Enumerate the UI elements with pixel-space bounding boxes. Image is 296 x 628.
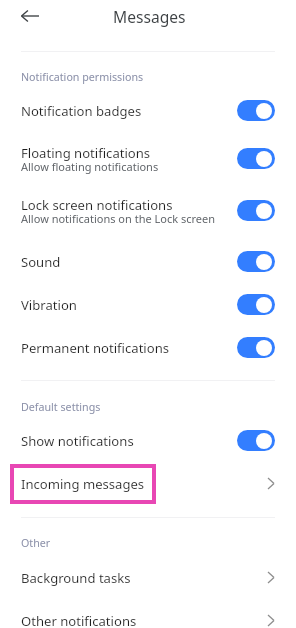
staticText: Floating notifications	[21, 144, 151, 162]
staticText: Show notifications	[21, 432, 134, 450]
button[interactable]: Notification badges switch, on	[237, 100, 275, 121]
button[interactable]: Notification badges	[0, 89, 296, 132]
staticText: Permanent notifications	[21, 339, 170, 357]
staticText: Background tasks	[21, 569, 269, 587]
staticText: Notification badges	[21, 102, 142, 120]
staticText: Lock screen notifications	[21, 196, 173, 214]
button[interactable]: Show notifications	[0, 419, 296, 462]
button[interactable]: Show notifications switch, on	[237, 430, 275, 451]
staticText: Notification permissions	[21, 70, 144, 85]
button[interactable]: Lock screen notifications switch, on	[237, 200, 275, 221]
button[interactable]: Floating notifications	[0, 132, 296, 184]
button[interactable]: Other notifications	[0, 599, 296, 628]
button[interactable]: Vibration switch, on	[237, 294, 275, 315]
button[interactable]: Back	[9, 4, 51, 28]
button[interactable]: Permanent notifications switch, on	[237, 337, 275, 358]
staticText: Other	[21, 536, 51, 551]
staticText: Allow notifications on the Lock screen	[21, 211, 216, 226]
button[interactable]: Background tasks	[0, 556, 296, 599]
staticText: Vibration	[21, 296, 77, 314]
staticText: Default settings	[21, 400, 101, 415]
button[interactable]: Lock screen notifications	[0, 184, 296, 236]
button[interactable]: Sound	[0, 240, 296, 283]
button[interactable]: Floating notifications switch, on	[237, 148, 275, 169]
staticText: Allow floating notifications	[21, 159, 159, 174]
staticText: Other notifications	[21, 612, 269, 628]
button[interactable]: Vibration	[0, 283, 296, 326]
button[interactable]: Sound switch, on	[237, 251, 275, 272]
staticText: Sound	[21, 253, 61, 271]
staticText: Incoming messages	[21, 475, 269, 493]
button[interactable]: Incoming messages	[0, 462, 296, 505]
staticText: Messages	[113, 6, 186, 27]
button[interactable]: Permanent notifications	[0, 326, 296, 369]
